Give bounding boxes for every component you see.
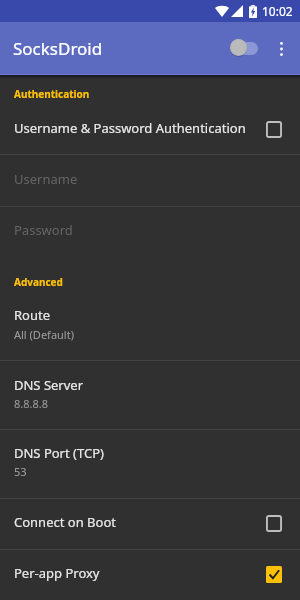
staticText: 8.8.8.8 [14, 396, 49, 411]
button[interactable]: Username [0, 155, 300, 206]
staticText: Password [14, 221, 73, 239]
staticText: DNS Server [14, 376, 84, 394]
staticText: DNS Port (TCP) [14, 444, 104, 462]
staticText: Advanced [14, 275, 63, 289]
staticText: Username [14, 170, 78, 188]
staticText: SocksDroid [13, 37, 103, 60]
button[interactable]: Password [0, 207, 300, 258]
button[interactable]: Enable proxy [224, 30, 264, 66]
button[interactable]: Username & Password Authentication [0, 107, 300, 154]
button[interactable]: Per-app Proxy [0, 550, 300, 600]
staticText: Username & Password Authentication [14, 119, 246, 137]
staticText: Per-app Proxy [14, 564, 100, 582]
staticText: All (Default) [14, 327, 74, 342]
button[interactable]: Connect on Boot [0, 499, 300, 549]
button[interactable]: DNS Server [0, 361, 300, 429]
staticText: Route [14, 306, 51, 324]
button[interactable]: Route [0, 295, 300, 360]
button[interactable]: More options [266, 29, 296, 69]
staticText: 10:02 [262, 3, 293, 19]
staticText: 53 [14, 464, 27, 479]
staticText: Authentication [14, 87, 90, 101]
button[interactable]: DNS Port (TCP) [0, 430, 300, 498]
staticText: Connect on Boot [14, 513, 116, 531]
